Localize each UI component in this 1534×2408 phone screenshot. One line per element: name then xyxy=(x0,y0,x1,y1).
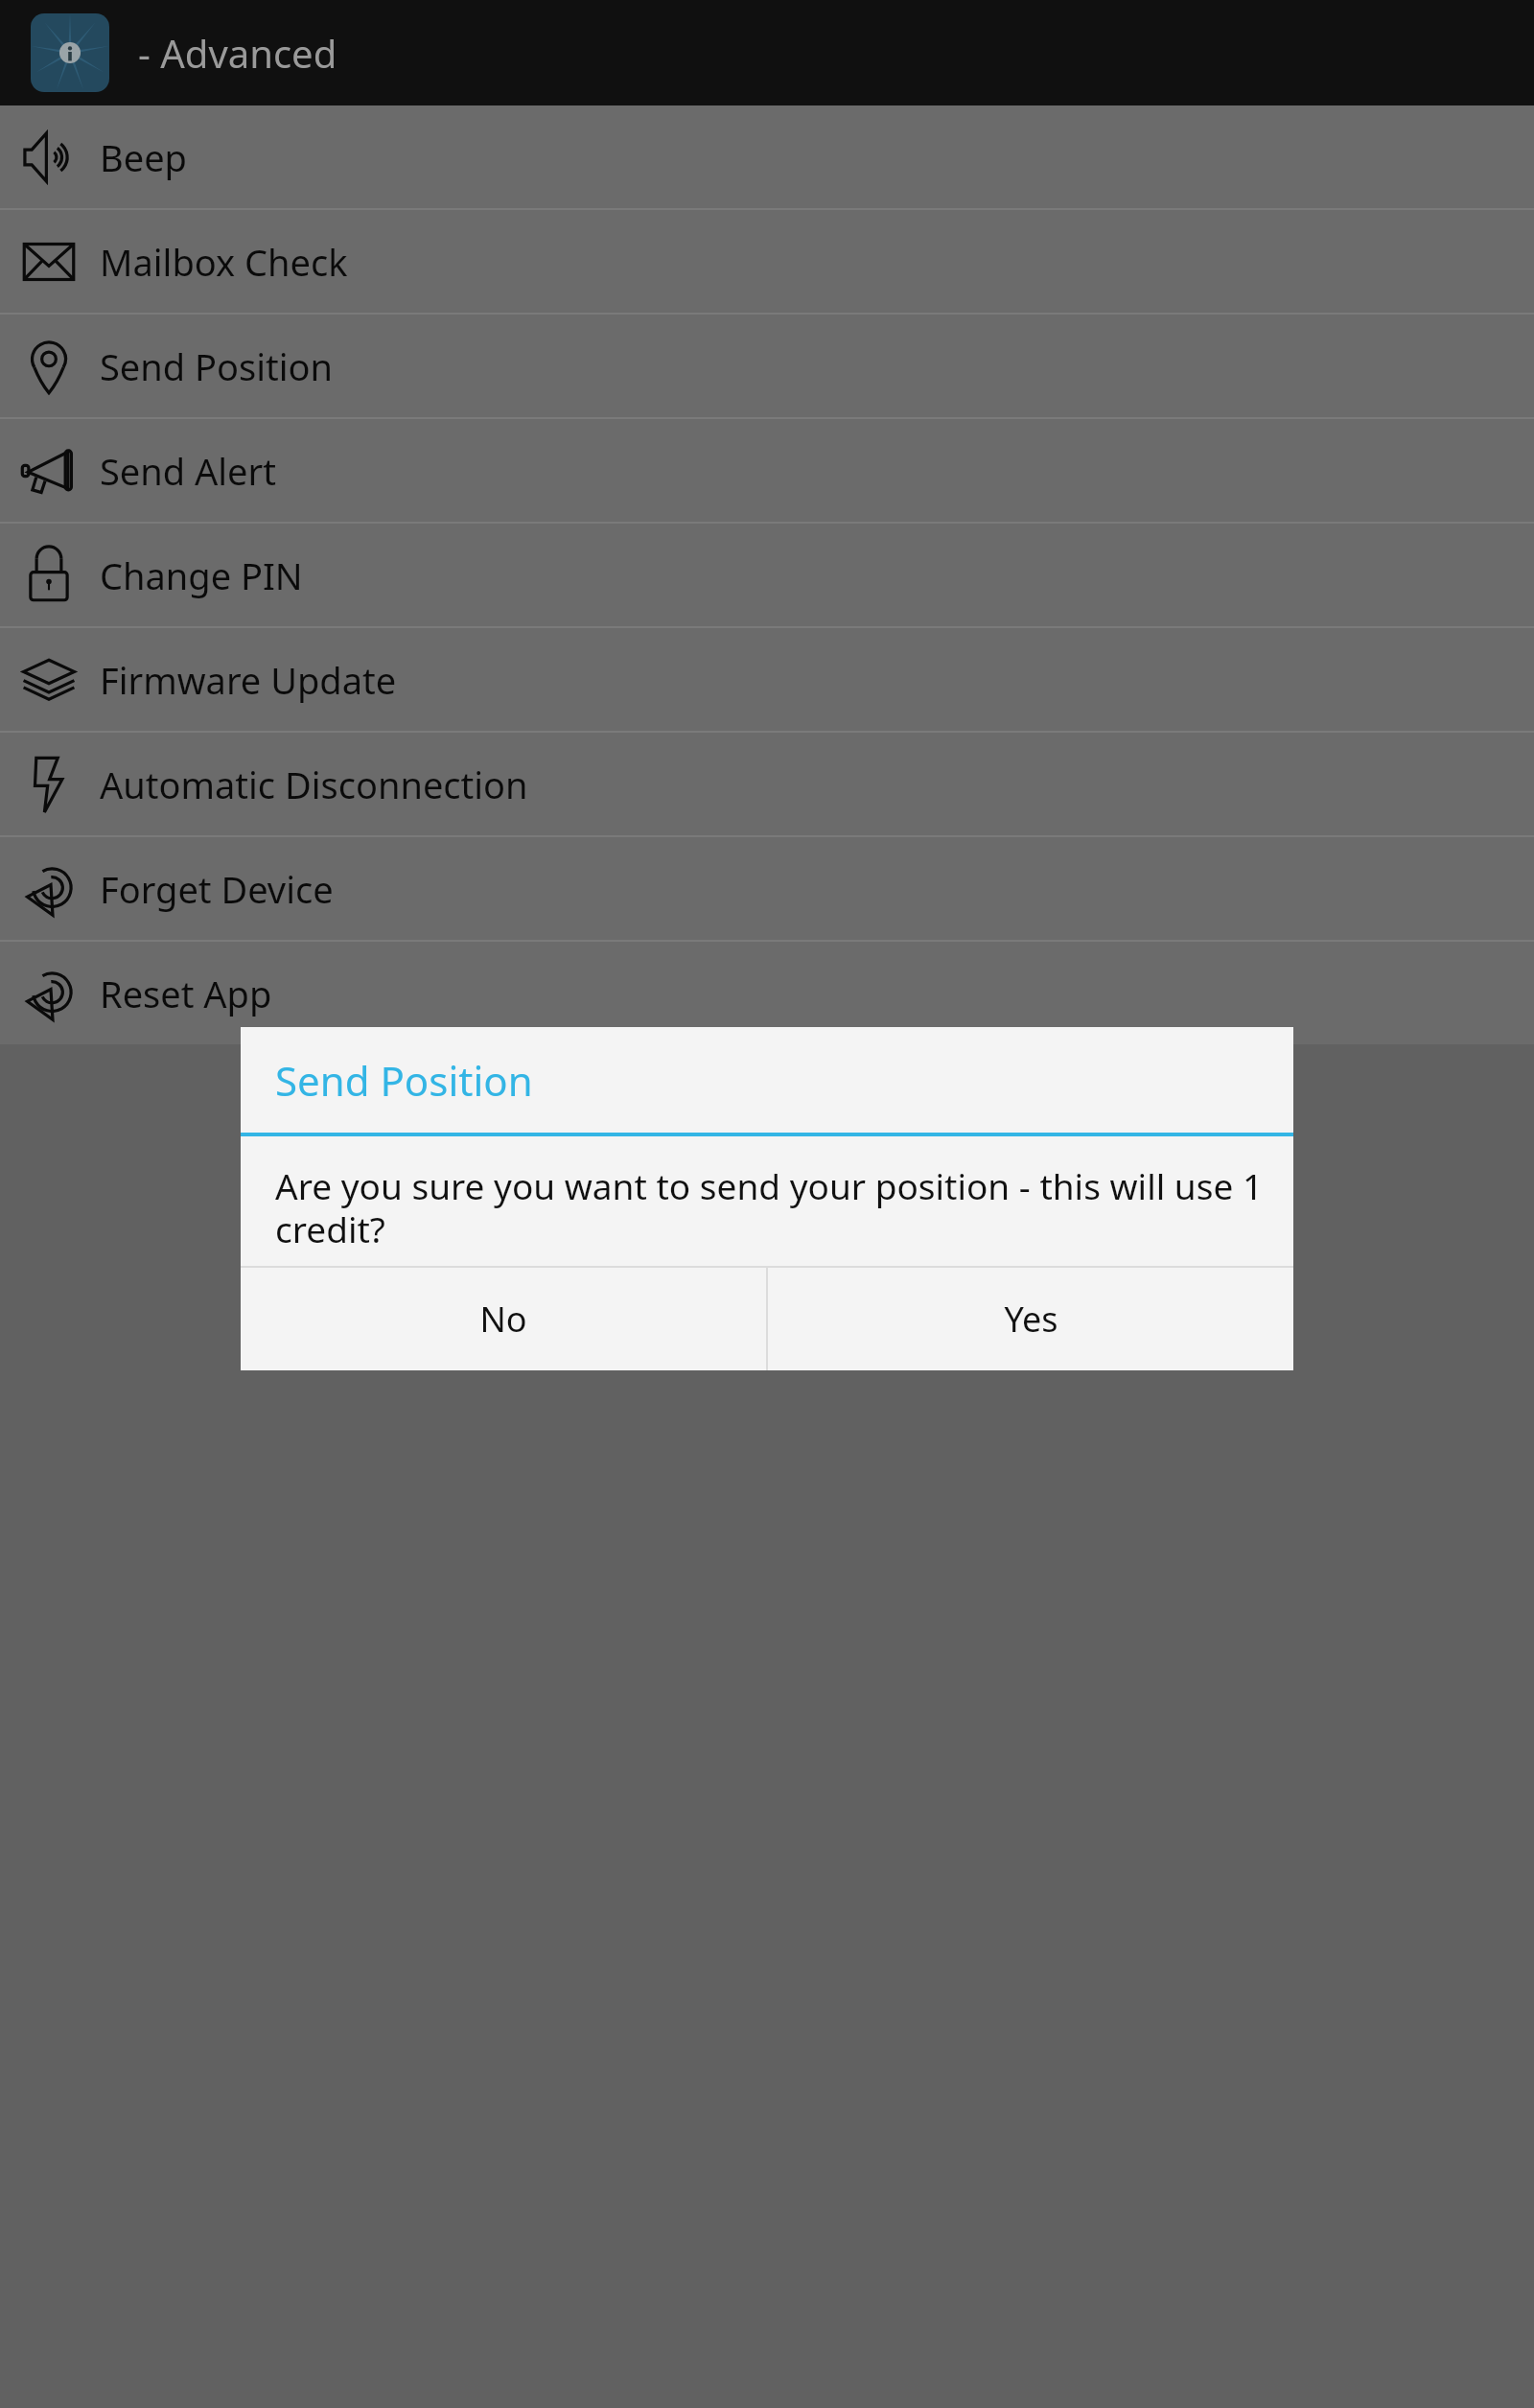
staticText: Reset App xyxy=(100,969,272,1018)
button[interactable]: Reset App xyxy=(0,942,1534,1044)
button[interactable]: Send Position xyxy=(0,315,1534,417)
staticText: - Advanced xyxy=(138,27,337,79)
staticText: No xyxy=(479,1296,527,1343)
staticText: Mailbox Check xyxy=(100,237,348,287)
button[interactable]: App icon xyxy=(31,13,109,92)
button[interactable]: No xyxy=(241,1268,766,1370)
staticText: Yes xyxy=(1004,1296,1058,1343)
button[interactable]: Yes xyxy=(768,1268,1293,1370)
staticText: Firmware Update xyxy=(100,655,397,705)
staticText: Change PIN xyxy=(100,550,303,600)
staticText: Send Alert xyxy=(100,446,276,496)
button[interactable]: Automatic Disconnection xyxy=(0,733,1534,835)
staticText: Send Position xyxy=(275,1053,533,1108)
staticText: Are you sure you want to send your posit… xyxy=(275,1161,1265,1253)
button[interactable]: Change PIN xyxy=(0,524,1534,626)
button[interactable]: Mailbox Check xyxy=(0,210,1534,313)
button[interactable]: Forget Device xyxy=(0,837,1534,940)
staticText: Send Position xyxy=(100,341,334,391)
button[interactable]: Beep xyxy=(0,105,1534,208)
button[interactable]: Send Alert xyxy=(0,419,1534,522)
staticText: Automatic Disconnection xyxy=(100,760,528,809)
button[interactable]: Firmware Update xyxy=(0,628,1534,731)
staticText: Beep xyxy=(100,132,187,182)
staticText: Forget Device xyxy=(100,864,334,914)
